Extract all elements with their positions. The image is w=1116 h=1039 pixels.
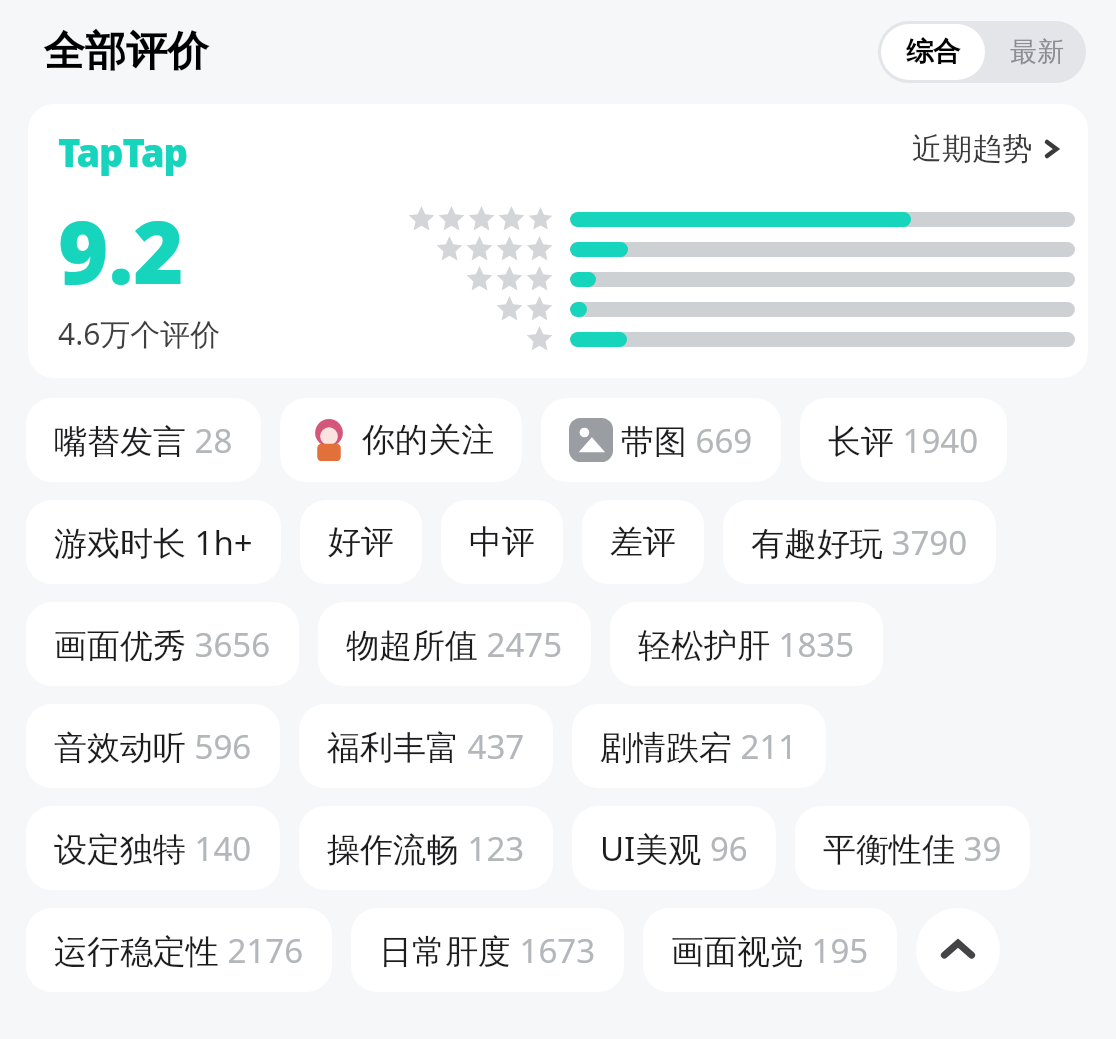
button[interactable]: 设定独特 140 (26, 806, 280, 890)
staticText: 近期趋势 (912, 130, 1032, 168)
staticText: 轻松护肝 1835 (638, 622, 855, 667)
staticText: 物超所值 2475 (346, 622, 563, 667)
button[interactable]: 嘴替发言 28 (26, 398, 261, 482)
staticText: 设定独特 140 (54, 826, 252, 871)
button[interactable]: 音效动听 596 (26, 704, 280, 788)
staticText: 你的关注 (362, 419, 494, 461)
button[interactable]: 好评 (300, 500, 422, 584)
staticText: 长评 1940 (828, 418, 979, 463)
button[interactable]: 轻松护肝 1835 (610, 602, 883, 686)
button[interactable]: 差评 (582, 500, 704, 584)
button[interactable]: 剧情跌宕 211 (572, 704, 826, 788)
button[interactable]: 带图 669 (541, 398, 781, 482)
staticText: 剧情跌宕 211 (600, 724, 798, 769)
staticText: 4.6万个评价 (58, 313, 221, 354)
button[interactable]: 游戏时长 1h+ (26, 500, 281, 584)
button[interactable]: 运行稳定性 2176 (26, 908, 332, 992)
staticText: 中评 (469, 521, 535, 563)
staticText: 差评 (610, 521, 676, 563)
staticText: 嘴替发言 28 (54, 418, 233, 463)
button[interactable]: 福利丰富 437 (299, 704, 553, 788)
button[interactable]: 操作流畅 123 (299, 806, 553, 890)
staticText: 有趣好玩 3790 (751, 520, 968, 565)
button[interactable]: 画面优秀 3656 (26, 602, 299, 686)
staticText: 好评 (328, 521, 394, 563)
staticText: 运行稳定性 2176 (54, 928, 304, 973)
staticText: 操作流畅 123 (327, 826, 525, 871)
staticText: 综合 (906, 35, 960, 69)
staticText: 9.2 (58, 192, 184, 309)
staticText: UI美观 96 (600, 826, 748, 871)
staticText: 音效动听 596 (54, 724, 252, 769)
button[interactable]: 近期趋势 (912, 130, 1062, 168)
button[interactable]: 最新 (988, 21, 1086, 83)
button[interactable]: 物超所值 2475 (318, 602, 591, 686)
button[interactable]: 画面视觉 195 (643, 908, 897, 992)
button[interactable]: UI美观 96 (572, 806, 776, 890)
staticText: 画面视觉 195 (671, 928, 869, 973)
button[interactable]: 有趣好玩 3790 (723, 500, 996, 584)
button[interactable]: 日常肝度 1673 (351, 908, 624, 992)
staticText: 日常肝度 1673 (379, 928, 596, 973)
button[interactable]: 你的关注 (280, 398, 522, 482)
button[interactable]: Collapse tags (916, 908, 1000, 992)
staticText: 平衡性佳 39 (823, 826, 1002, 871)
button[interactable]: 长评 1940 (800, 398, 1007, 482)
button[interactable]: 中评 (441, 500, 563, 584)
button[interactable]: 综合 (881, 24, 985, 80)
staticText: 带图 669 (621, 418, 753, 463)
button[interactable]: 平衡性佳 39 (795, 806, 1030, 890)
staticText: TapTap (58, 126, 188, 178)
staticText: 福利丰富 437 (327, 724, 525, 769)
staticText: 最新 (1010, 35, 1064, 69)
staticText: 游戏时长 1h+ (54, 520, 253, 565)
staticText: 画面优秀 3656 (54, 622, 271, 667)
staticText: 全部评价 (44, 26, 208, 78)
